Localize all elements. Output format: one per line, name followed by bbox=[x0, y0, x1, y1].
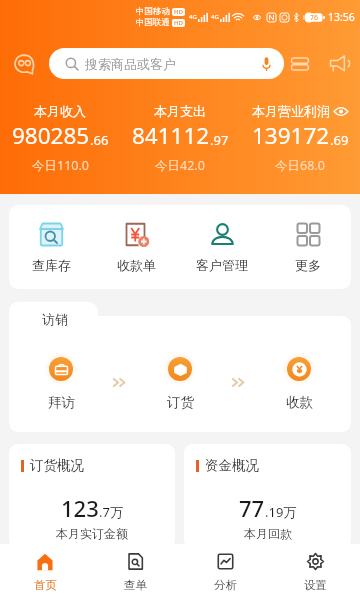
staticText: .19万 bbox=[265, 503, 297, 521]
staticText: 本月营业利润 bbox=[252, 103, 330, 119]
staticText: 查库存 bbox=[32, 257, 71, 273]
staticText: 更多 bbox=[295, 257, 321, 273]
staticText: 资金概况 bbox=[205, 457, 259, 474]
button[interactable]: 资金概况 bbox=[184, 444, 351, 549]
staticText: 本月收入 bbox=[34, 103, 86, 119]
staticText: 中国移动 bbox=[136, 6, 170, 17]
staticText: 今日42.0 bbox=[155, 157, 205, 174]
button[interactable]: 订货概况 bbox=[9, 444, 175, 549]
button[interactable]: 设置 bbox=[270, 544, 360, 600]
button[interactable]: 客户管理 bbox=[179, 205, 265, 289]
staticText: 拜访 bbox=[48, 394, 75, 411]
staticText: 本月支出 bbox=[154, 103, 206, 119]
staticText: 980285 bbox=[12, 120, 90, 151]
button[interactable]: 本月收入 bbox=[0, 103, 120, 174]
staticText: HD bbox=[174, 8, 183, 16]
staticText: 设置 bbox=[304, 578, 327, 592]
staticText: 订货概况 bbox=[30, 457, 84, 474]
staticText: 收款单 bbox=[117, 257, 156, 273]
staticText: 77 bbox=[239, 493, 265, 523]
staticText: HD bbox=[174, 19, 183, 27]
staticText: 中国联通 bbox=[136, 17, 170, 28]
staticText: 841112 bbox=[132, 120, 210, 151]
staticText: 订货 bbox=[167, 394, 194, 411]
staticText: 今日110.0 bbox=[32, 157, 89, 174]
staticText: 本月实订金额 bbox=[56, 526, 128, 541]
staticText: 139172 bbox=[252, 120, 330, 151]
staticText: 客户管理 bbox=[196, 257, 248, 273]
button[interactable]: Announcements bbox=[316, 48, 360, 79]
button[interactable]: 首页 bbox=[0, 544, 90, 600]
button[interactable]: 搜索商品或客户 bbox=[49, 48, 284, 79]
button[interactable]: 订货 bbox=[128, 316, 232, 411]
button[interactable]: 查单 bbox=[90, 544, 180, 600]
button[interactable]: 分析 bbox=[180, 544, 270, 600]
button[interactable]: 更多 bbox=[265, 205, 351, 289]
button[interactable]: Scan bbox=[284, 48, 316, 79]
staticText: 首页 bbox=[34, 578, 57, 592]
staticText: 收款 bbox=[286, 394, 313, 411]
staticText: 13:56 bbox=[328, 10, 355, 24]
button[interactable]: 收款单 bbox=[94, 205, 179, 289]
staticText: .66 bbox=[90, 131, 109, 149]
staticText: 搜索商品或客户 bbox=[85, 56, 176, 72]
button[interactable]: 查库存 bbox=[9, 205, 94, 289]
staticText: 今日68.0 bbox=[275, 157, 325, 174]
staticText: 4G bbox=[189, 13, 197, 21]
button[interactable]: 拜访 bbox=[9, 316, 113, 411]
staticText: 本月回款 bbox=[244, 526, 292, 541]
button[interactable] bbox=[9, 302, 98, 317]
button[interactable]: 本月营业利润 bbox=[240, 103, 360, 174]
staticText: 访销 bbox=[42, 311, 68, 327]
button[interactable]: 本月支出 bbox=[120, 103, 240, 174]
staticText: 76 bbox=[310, 13, 319, 23]
staticText: .69 bbox=[330, 131, 349, 149]
staticText: 分析 bbox=[214, 578, 237, 592]
staticText: 123 bbox=[61, 493, 99, 523]
staticText: 查单 bbox=[124, 578, 147, 592]
staticText: 4G bbox=[211, 13, 219, 21]
button[interactable]: Messages bbox=[0, 48, 49, 79]
staticText: .7万 bbox=[99, 503, 123, 521]
staticText: .97 bbox=[210, 131, 229, 149]
button[interactable]: 收款 bbox=[247, 316, 351, 411]
